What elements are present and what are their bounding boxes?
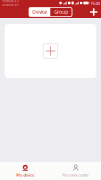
button[interactable]: Device (29, 7, 50, 16)
staticText: Personal center (62, 172, 89, 178)
staticText: 中国联通 4G (1, 0, 18, 3)
button[interactable]: My device (0, 162, 50, 180)
staticText: Group (54, 9, 68, 15)
staticText: Device (32, 9, 47, 15)
button[interactable]: Group (50, 7, 72, 16)
button[interactable]: Personal center (50, 162, 101, 180)
staticText: My device (16, 172, 34, 178)
staticText: 中国联通 4G (1, 3, 18, 7)
button[interactable]: Add device (5, 24, 96, 78)
staticText: 16:44 (90, 0, 99, 6)
button[interactable]: Add (90, 8, 101, 16)
